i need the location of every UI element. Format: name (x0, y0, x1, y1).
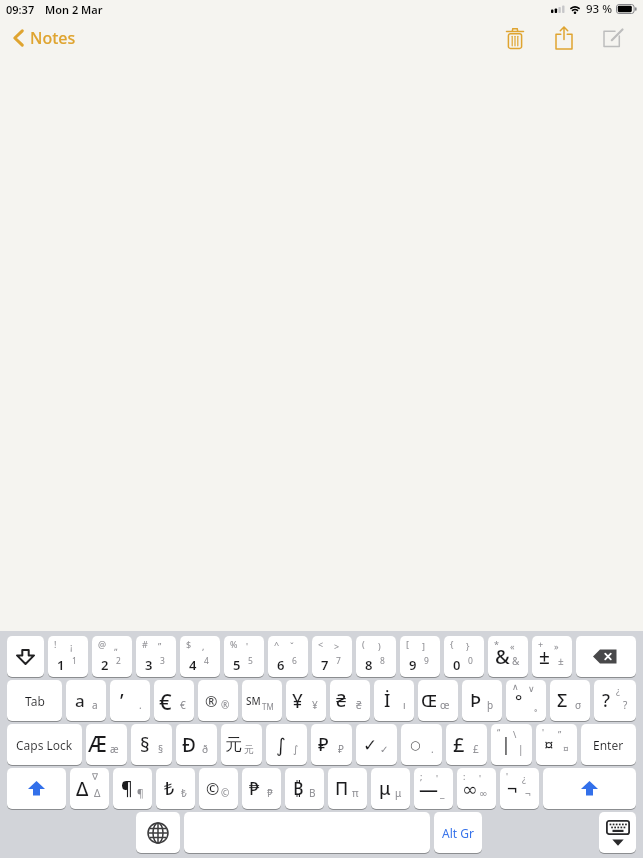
staticText: ¡ (70, 640, 73, 652)
button[interactable] (543, 768, 636, 810)
staticText: ₴ (336, 688, 347, 713)
button[interactable]: ₿ (285, 768, 324, 810)
staticText: § (140, 732, 150, 758)
staticText: ± (558, 654, 564, 668)
button[interactable]: Alt Gr (434, 812, 482, 854)
staticText: ∇ (92, 772, 99, 782)
button[interactable]: ¶ (113, 768, 152, 810)
staticText: ∞ (462, 778, 478, 800)
button[interactable]: ₱ (242, 768, 281, 810)
staticText: “ (497, 726, 501, 738)
button[interactable] (136, 812, 180, 854)
staticText: ı (403, 698, 406, 712)
button[interactable] (576, 636, 636, 678)
button[interactable]: @ (92, 636, 132, 678)
button[interactable]: ’ (110, 680, 150, 722)
button[interactable]: Tab (7, 680, 62, 722)
staticText: ° (515, 689, 523, 712)
button[interactable] (7, 636, 44, 678)
button[interactable] (597, 24, 629, 52)
staticText: ( (362, 638, 365, 650)
button[interactable] (7, 768, 66, 810)
button[interactable]: ' (536, 724, 577, 766)
staticText: ¶ (121, 776, 133, 801)
staticText: 1 (72, 655, 77, 667)
button[interactable]: SM (242, 680, 282, 722)
button[interactable]: $ (180, 636, 220, 678)
staticText: ' (542, 726, 545, 738)
button[interactable]: ! (48, 636, 88, 678)
staticText: 5 (233, 656, 241, 674)
staticText: » (554, 640, 559, 652)
staticText: 0 (468, 655, 473, 667)
button[interactable]: # (136, 636, 176, 678)
button[interactable]: 元 (221, 724, 262, 766)
button[interactable]: ∇ (70, 768, 109, 810)
button[interactable]: ✓ (356, 724, 397, 766)
button[interactable]: Æ (86, 724, 127, 766)
button[interactable]: ₽ (311, 724, 352, 766)
button[interactable]: ; (414, 768, 453, 810)
staticText: 09:37 (6, 2, 35, 17)
button[interactable]: ○ (401, 724, 442, 766)
staticText: « (510, 640, 515, 652)
button[interactable]: ' (500, 768, 539, 810)
button[interactable]: © (199, 768, 238, 810)
staticText: ) (378, 640, 381, 652)
button[interactable]: [ (400, 636, 440, 678)
staticText: £ (473, 742, 479, 756)
button[interactable]: “ (491, 724, 532, 766)
staticText: İ (384, 688, 391, 713)
button[interactable]: + (532, 636, 572, 678)
staticText: © (206, 778, 220, 800)
staticText: Œ (421, 689, 437, 712)
staticText: @ (98, 638, 107, 650)
button[interactable]: ^ (268, 636, 308, 678)
button[interactable]: ∧ (506, 680, 546, 722)
button[interactable]: ∫ (266, 724, 307, 766)
button[interactable]: < (312, 636, 352, 678)
button[interactable]: * (488, 636, 528, 678)
staticText: ' (479, 772, 482, 784)
staticText: ∫ (293, 744, 299, 756)
staticText: Π (335, 776, 349, 801)
staticText: ; (420, 770, 423, 782)
button[interactable]: £ (446, 724, 487, 766)
button[interactable] (184, 812, 430, 854)
button[interactable]: Σ (550, 680, 590, 722)
button[interactable]: ₴ (330, 680, 370, 722)
staticText: B (309, 786, 316, 800)
staticText: 4 (204, 655, 209, 667)
staticText: , (202, 640, 205, 652)
button[interactable]: ( (356, 636, 396, 678)
staticText: Δ (94, 786, 101, 800)
button[interactable]: ₺ (156, 768, 195, 810)
button[interactable]: ¿ (594, 680, 636, 722)
button[interactable]: Notes (13, 27, 76, 49)
button[interactable]: μ (371, 768, 410, 810)
button[interactable]: ¥ (286, 680, 326, 722)
staticText: & (495, 643, 510, 670)
staticText: Æ (88, 730, 107, 759)
button[interactable]: İ (374, 680, 414, 722)
button[interactable]: Π (328, 768, 367, 810)
button[interactable]: % (224, 636, 264, 678)
button[interactable] (499, 24, 531, 52)
button[interactable]: : (457, 768, 496, 810)
button[interactable]: Ð (176, 724, 217, 766)
staticText: 6 (292, 655, 297, 667)
staticText: æ (110, 742, 119, 756)
button[interactable]: Enter (581, 724, 636, 766)
button[interactable] (548, 24, 580, 52)
button[interactable]: { (444, 636, 484, 678)
staticText: Alt Gr (442, 825, 474, 841)
button[interactable]: § (131, 724, 172, 766)
button[interactable]: a (66, 680, 106, 722)
button[interactable]: Caps Lock (7, 724, 82, 766)
staticText: ˳ (534, 698, 538, 712)
button[interactable]: Þ (462, 680, 502, 722)
button[interactable] (599, 812, 636, 854)
button[interactable]: € (154, 680, 194, 722)
button[interactable]: ® (198, 680, 238, 722)
button[interactable]: Œ (418, 680, 458, 722)
